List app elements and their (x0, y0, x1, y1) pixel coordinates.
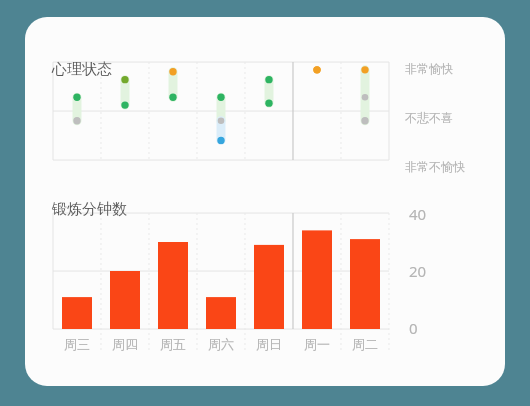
staticText: 周二 (352, 336, 378, 352)
button[interactable]: Health summary card (25, 17, 505, 386)
button[interactable]: 周六 (208, 336, 234, 352)
staticText: 非常不愉快 (405, 159, 465, 174)
staticText: 20 (409, 261, 427, 281)
staticText: 锻炼分钟数 (52, 200, 127, 219)
button[interactable]: 锻炼分钟数 (52, 200, 127, 219)
button[interactable]: 周四 (112, 336, 138, 352)
button[interactable]: 周五 (160, 336, 186, 352)
staticText: 周四 (112, 336, 138, 352)
staticText: 0 (409, 318, 418, 338)
staticText: 周日 (256, 336, 282, 352)
button[interactable]: 周二 (352, 336, 378, 352)
staticText: 周三 (64, 336, 90, 352)
staticText: 心理状态 (52, 60, 112, 79)
staticText: 周五 (160, 336, 186, 352)
button[interactable]: 周三 (64, 336, 90, 352)
button[interactable]: 周一 (304, 336, 330, 352)
staticText: 不悲不喜 (405, 110, 453, 125)
staticText: 周一 (304, 336, 330, 352)
staticText: 周六 (208, 336, 234, 352)
staticText: 40 (409, 204, 427, 224)
staticText: 非常愉快 (405, 61, 453, 76)
button[interactable]: 心理状态 (52, 60, 112, 79)
button[interactable]: 周日 (256, 336, 282, 352)
